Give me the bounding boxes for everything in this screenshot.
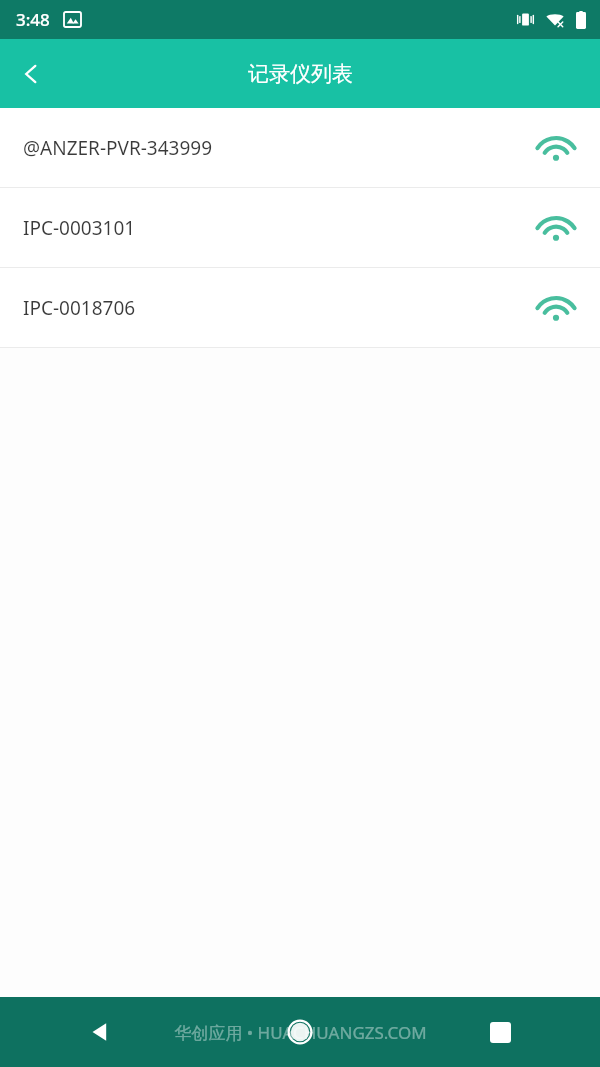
staticText: 华创应用 • HUACHUANGZS.COM	[174, 1021, 427, 1044]
staticText: 3:48	[16, 8, 50, 31]
button[interactable]: Recent apps	[400, 997, 600, 1067]
button[interactable]: Back	[0, 997, 200, 1067]
button[interactable]: @ANZER-PVR-343999	[0, 108, 600, 187]
staticText: @ANZER-PVR-343999	[23, 135, 538, 161]
staticText: 记录仪列表	[248, 61, 353, 87]
staticText: IPC-0018706	[23, 295, 538, 321]
button[interactable]: Back	[0, 39, 62, 108]
button[interactable]: Home	[200, 997, 400, 1067]
button[interactable]: IPC-0018706	[0, 268, 600, 347]
button[interactable]: IPC-0003101	[0, 188, 600, 267]
staticText: IPC-0003101	[23, 215, 538, 241]
